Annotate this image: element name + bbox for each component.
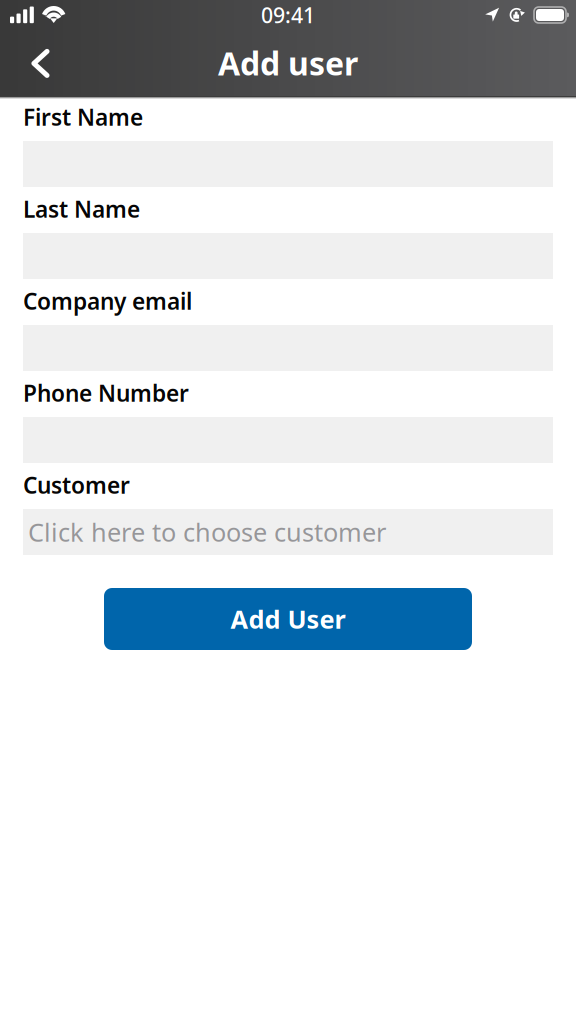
button[interactable]: Add User <box>104 588 472 650</box>
staticText: First Name <box>23 102 143 132</box>
button[interactable]: Back <box>0 35 64 91</box>
staticText: Customer <box>23 470 130 500</box>
staticText: Click here to choose customer <box>28 515 386 549</box>
staticText: 09:41 <box>261 1 315 29</box>
staticText: Add User <box>230 602 345 636</box>
staticText: Last Name <box>23 194 140 224</box>
staticText: Phone Number <box>23 378 189 408</box>
staticText: Add user <box>218 42 358 84</box>
staticText: Company email <box>23 286 192 316</box>
button[interactable]: Click here to choose customer <box>23 509 553 555</box>
